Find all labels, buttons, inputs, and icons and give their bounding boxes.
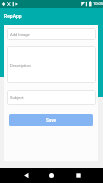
button[interactable]: Description bbox=[7, 46, 96, 83]
staticText: Add Image bbox=[10, 32, 30, 37]
button[interactable]: Recent apps bbox=[70, 168, 87, 183]
button[interactable]: Subject bbox=[7, 90, 96, 105]
staticText: 10:05 bbox=[93, 1, 103, 6]
button[interactable]: Add Image bbox=[7, 28, 96, 40]
button[interactable]: Home bbox=[43, 168, 60, 183]
staticText: RepApp bbox=[4, 13, 22, 19]
staticText: Subject bbox=[10, 95, 24, 100]
staticText: Save bbox=[46, 118, 56, 123]
button[interactable]: Save bbox=[9, 114, 93, 126]
staticText: Description bbox=[10, 63, 31, 68]
button[interactable]: Back bbox=[18, 168, 35, 183]
